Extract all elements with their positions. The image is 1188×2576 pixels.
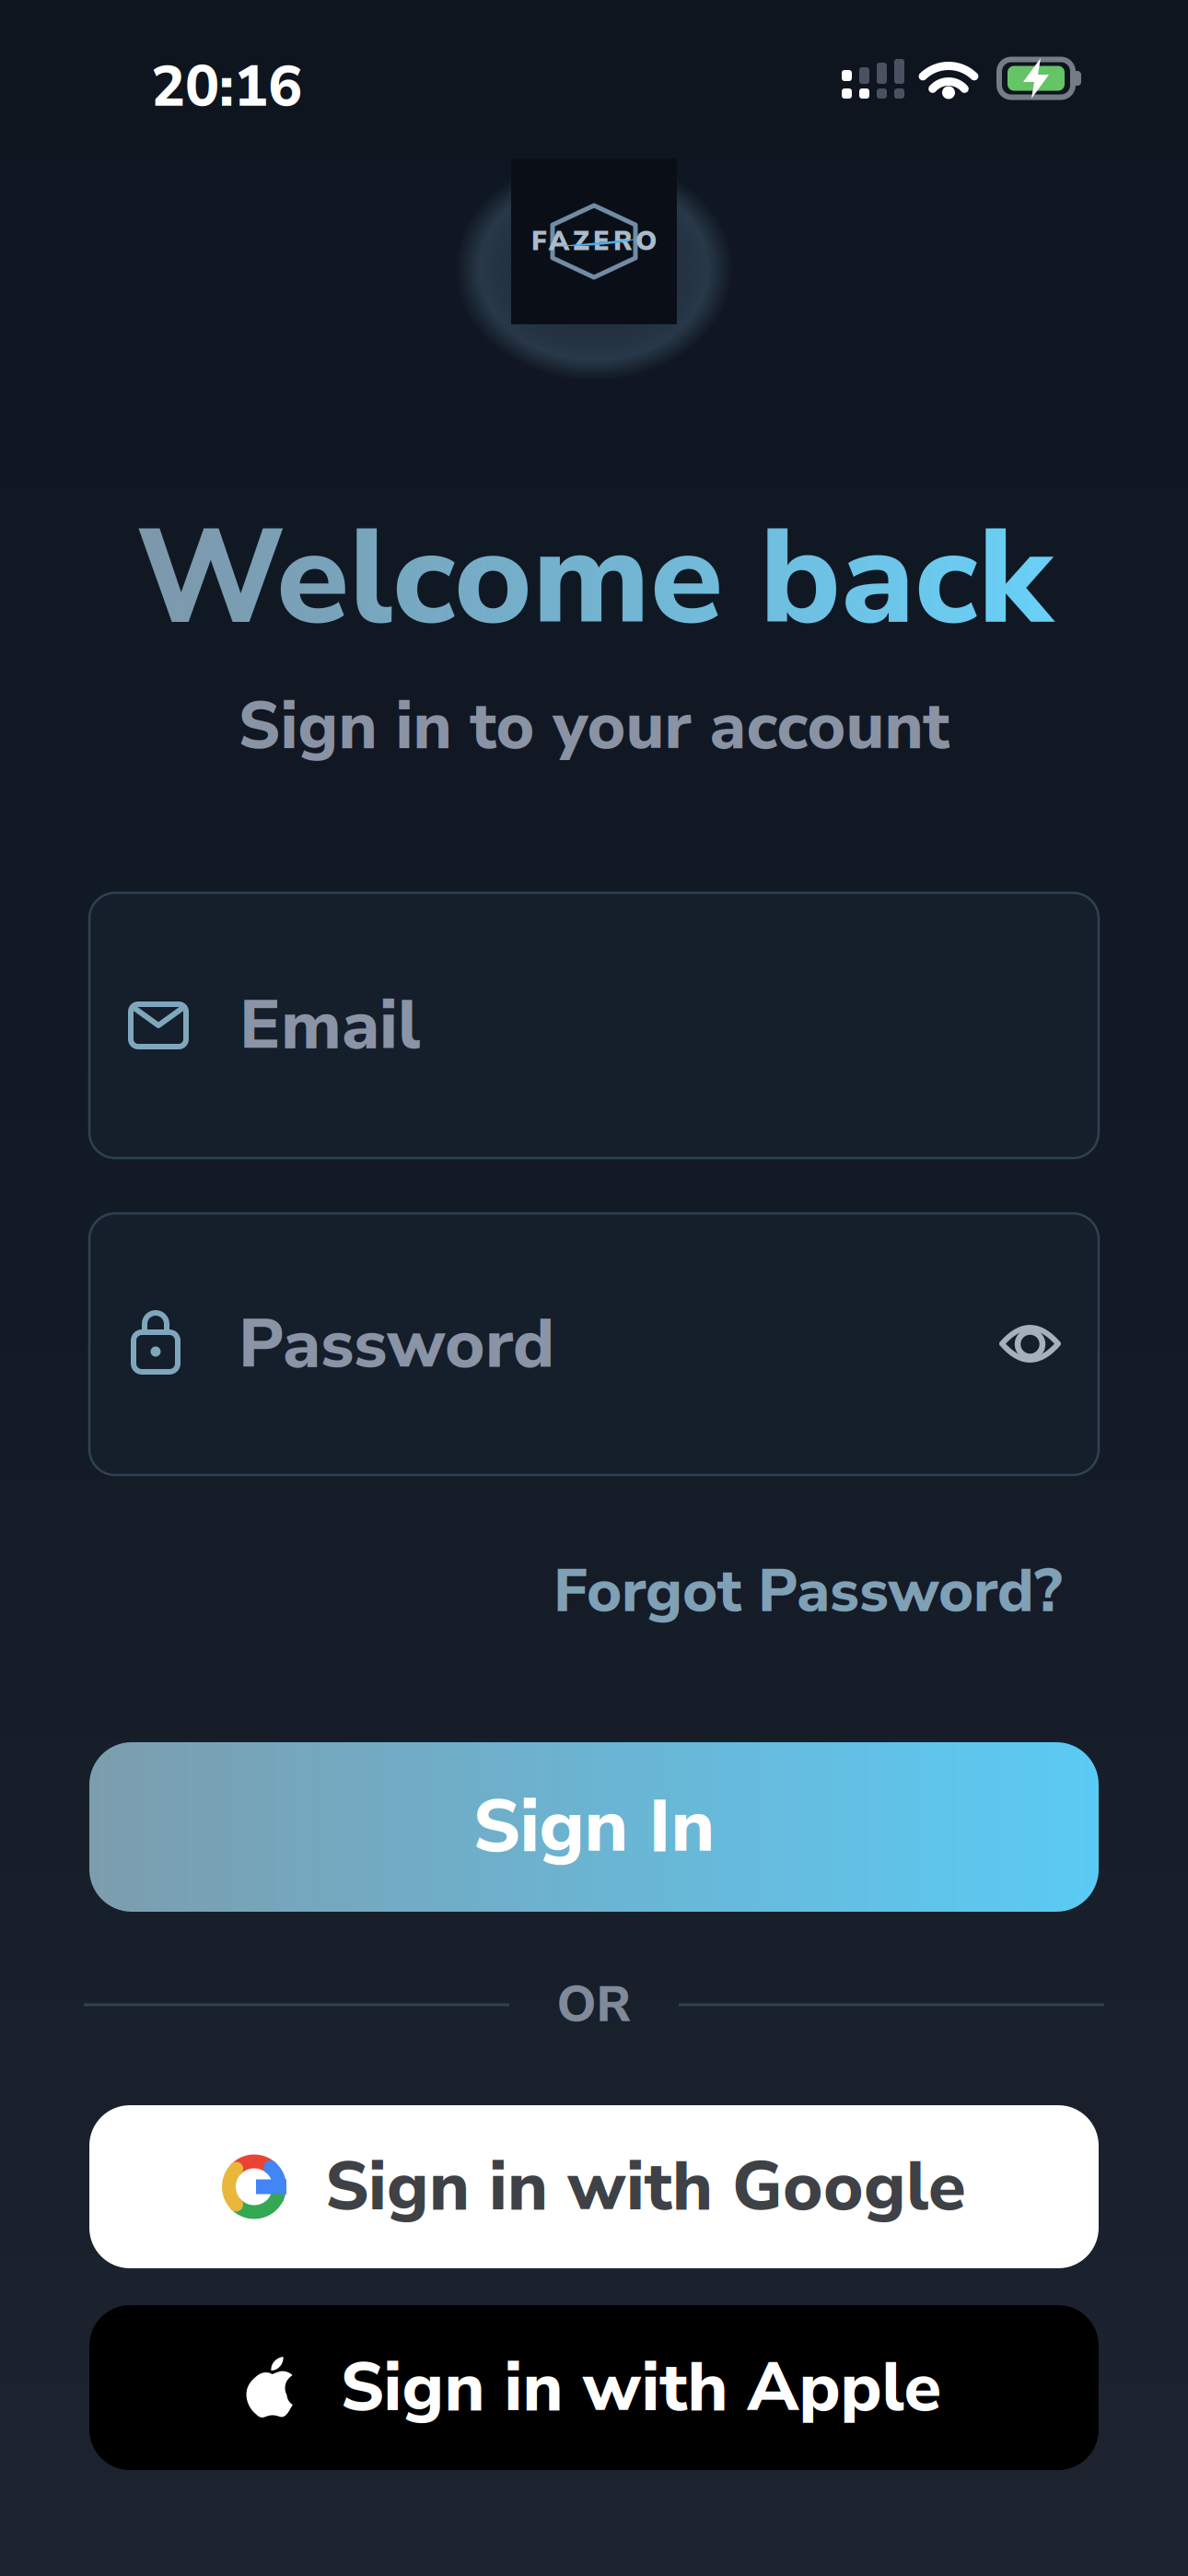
staticText: OR [557, 1971, 631, 2039]
button[interactable]: Sign in with Apple [89, 2305, 1099, 2470]
button[interactable]: Password [89, 1213, 1099, 1475]
staticText: Password [239, 1298, 554, 1391]
staticText: Sign in with Google [325, 2140, 966, 2233]
staticText: FAZERO [531, 223, 657, 260]
staticText: Sign in to your account [238, 682, 950, 771]
button[interactable]: Forgot Password? [553, 1551, 1062, 1632]
button[interactable]: Show password [1000, 1323, 1060, 1365]
staticText: Forgot Password? [553, 1551, 1062, 1632]
button[interactable]: Email [89, 893, 1099, 1158]
staticText: Email [239, 979, 421, 1072]
button[interactable]: Sign In [89, 1742, 1099, 1912]
button[interactable]: Sign in with Google [89, 2105, 1099, 2268]
staticText: 20:16 [151, 48, 302, 126]
staticText: Sign In [473, 1777, 715, 1877]
staticText: Sign in with Apple [340, 2341, 942, 2434]
